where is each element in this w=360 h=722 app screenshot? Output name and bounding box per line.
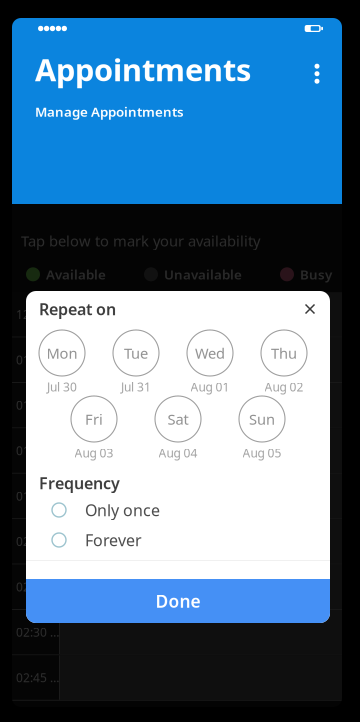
button[interactable]: Wed <box>180 330 240 395</box>
staticText: Aug 04 <box>158 445 197 461</box>
staticText: Appointments <box>35 49 251 90</box>
staticText: 02:00 AM <box>16 533 59 549</box>
button[interactable]: Sat <box>148 396 208 461</box>
staticText: Thu <box>271 343 297 363</box>
button[interactable]: Close <box>297 296 323 322</box>
staticText: Aug 02 <box>264 379 303 395</box>
staticText: Only once <box>85 499 160 521</box>
staticText: Forever <box>85 529 142 551</box>
staticText: Repeat on <box>39 298 116 320</box>
button[interactable]: Forever <box>26 525 330 555</box>
staticText: Manage Appointments <box>35 103 184 120</box>
staticText: Frequency <box>39 472 120 494</box>
staticText: 01:30 AM <box>16 443 59 458</box>
staticText: 01:00 AM <box>16 352 59 368</box>
button[interactable]: More options <box>303 60 331 110</box>
staticText: Available <box>46 265 106 283</box>
staticText: Unavailable <box>164 265 242 283</box>
button[interactable]: Only once <box>26 495 330 525</box>
button[interactable]: Tue <box>106 330 166 395</box>
staticText: Tue <box>124 343 148 363</box>
staticText: Busy <box>300 265 332 283</box>
staticText: Wed <box>195 343 225 363</box>
button[interactable]: Sun <box>232 396 292 461</box>
staticText: 01:15 AM <box>16 397 59 413</box>
button[interactable]: Mon <box>32 330 92 395</box>
staticText: Sun <box>249 409 275 429</box>
staticText: Jul 31 <box>121 379 151 395</box>
staticText: 02:45 AM <box>16 670 59 685</box>
staticText: Aug 05 <box>242 445 281 461</box>
staticText: Fri <box>85 409 103 429</box>
button[interactable]: Thu <box>254 330 314 395</box>
staticText: Mon <box>46 343 77 363</box>
button[interactable]: Done <box>26 579 330 623</box>
staticText: 12:45 AM <box>16 306 59 322</box>
staticText: 01:45 AM <box>16 488 59 504</box>
staticText: Aug 01 <box>190 379 229 395</box>
staticText: Sat <box>167 409 188 429</box>
staticText: 02:15 AM <box>16 579 59 595</box>
button[interactable]: Fri <box>64 396 124 461</box>
staticText: Jul 30 <box>47 379 77 395</box>
staticText: Aug 03 <box>74 445 113 461</box>
staticText: 02:30 AM <box>16 624 59 640</box>
staticText: Done <box>155 589 200 612</box>
staticText: Tap below to mark your availability <box>21 231 260 250</box>
